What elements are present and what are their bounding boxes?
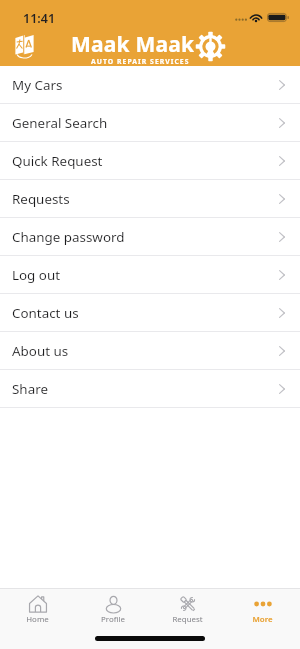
button[interactable]: More (225, 589, 300, 630)
staticText: Log out (12, 266, 61, 284)
staticText: Quick Request (12, 152, 103, 170)
button[interactable]: About us (0, 332, 300, 369)
staticText: Profile (101, 614, 125, 625)
staticText: About us (12, 342, 69, 360)
staticText: Maak Maak (71, 30, 195, 59)
button[interactable]: Quick Request (0, 142, 300, 179)
button[interactable]: Home (0, 589, 75, 630)
staticText: Contact us (12, 304, 79, 322)
staticText: Change password (12, 228, 125, 246)
button[interactable]: Share (0, 370, 300, 407)
button[interactable]: Translate (7, 27, 39, 66)
button[interactable]: My Cars (0, 66, 300, 103)
staticText: AUTO REPAIR SERVICES (91, 57, 190, 66)
staticText: Request (172, 614, 203, 625)
staticText: 11:41 (23, 10, 56, 27)
button[interactable]: Contact us (0, 294, 300, 331)
staticText: Requests (12, 190, 70, 208)
staticText: Home (26, 614, 49, 625)
staticText: My Cars (12, 76, 63, 94)
button[interactable]: Request (150, 589, 225, 630)
button[interactable]: Log out (0, 256, 300, 293)
staticText: Share (12, 380, 48, 398)
button[interactable]: Profile (75, 589, 150, 630)
button[interactable]: Requests (0, 180, 300, 217)
staticText: More (252, 614, 273, 625)
button[interactable]: General Search (0, 104, 300, 141)
staticText: General Search (12, 114, 108, 132)
button[interactable]: Change password (0, 218, 300, 255)
